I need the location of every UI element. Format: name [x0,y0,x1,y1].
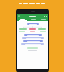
button[interactable]: App toolbar [17,14,48,18]
button[interactable]: Branch node right [38,28,46,30]
button[interactable] [38,18,48,21]
button[interactable] [17,18,28,21]
button[interactable] [40,31,46,32]
button[interactable]: Highlighted node [29,28,36,30]
button[interactable] [23,40,43,42]
button[interactable] [28,18,38,21]
button[interactable] [30,31,35,32]
button[interactable]: Menu [18,15,20,17]
button[interactable] [21,43,44,45]
button[interactable] [22,37,44,39]
button[interactable]: Root node [27,23,39,25]
button[interactable] [19,31,25,32]
button[interactable]: Branch node left [19,28,27,30]
button[interactable]: Add item [27,47,38,49]
button[interactable] [24,34,42,36]
